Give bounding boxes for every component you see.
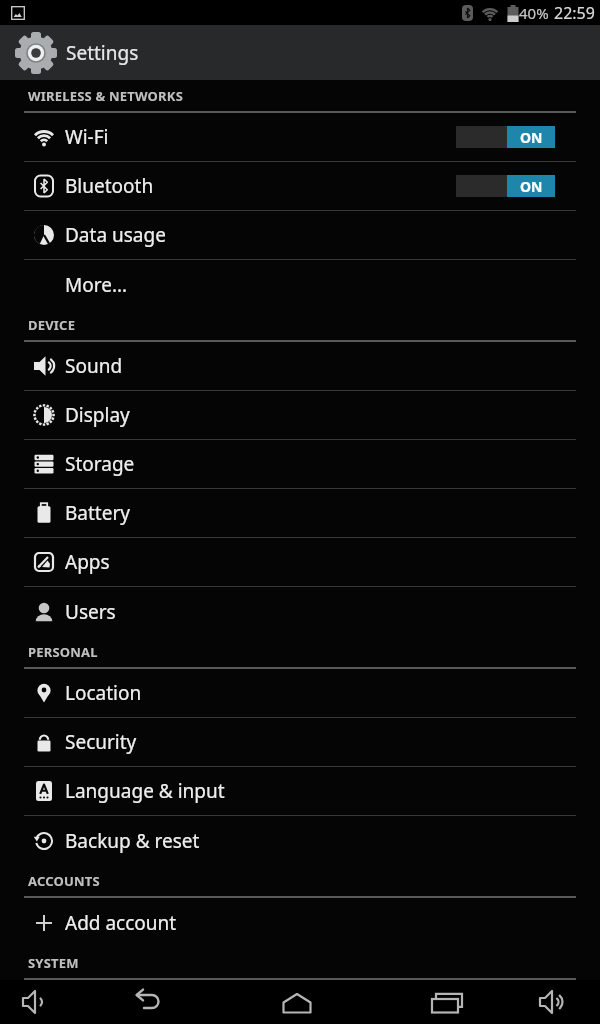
button[interactable]: Display — [0, 391, 600, 439]
staticText: Data usage — [65, 222, 166, 248]
button[interactable]: Users — [0, 587, 600, 636]
button[interactable]: Bluetooth — [0, 162, 600, 210]
staticText: Storage — [65, 451, 135, 477]
button[interactable]: Apps — [0, 538, 600, 586]
button[interactable]: Battery — [0, 489, 600, 537]
staticText: Display — [65, 402, 130, 428]
button[interactable]: ON — [456, 175, 555, 197]
button[interactable]: Data usage — [0, 211, 600, 259]
button[interactable]: Add account — [0, 898, 600, 947]
staticText: Security — [65, 729, 137, 755]
staticText: More… — [65, 272, 127, 298]
staticText: Wi-Fi — [65, 124, 109, 150]
staticText: Backup & reset — [65, 828, 200, 854]
staticText: DEVICE — [28, 316, 76, 334]
staticText: Bluetooth — [65, 173, 154, 199]
button[interactable]: Sound — [0, 342, 600, 390]
staticText: Settings — [66, 40, 139, 66]
button[interactable] — [2, 980, 72, 1024]
staticText: Location — [65, 680, 142, 706]
staticText: SYSTEM — [28, 954, 79, 972]
staticText: Sound — [65, 353, 123, 379]
button[interactable]: Location — [0, 669, 600, 717]
staticText: Battery — [65, 500, 130, 526]
button[interactable] — [115, 980, 185, 1024]
button[interactable]: ON — [456, 126, 555, 148]
staticText: WIRELESS & NETWORKS — [28, 87, 184, 105]
button[interactable]: Security — [0, 718, 600, 766]
button[interactable]: Backup & reset — [0, 816, 600, 865]
staticText: ON — [520, 128, 543, 147]
staticText: Add account — [65, 910, 177, 936]
button[interactable]: Wi-Fi — [0, 113, 600, 161]
staticText: Language & input — [65, 778, 225, 804]
button[interactable] — [262, 980, 332, 1024]
button[interactable]: Storage — [0, 440, 600, 488]
button[interactable]: More… — [0, 260, 600, 309]
staticText: ON — [520, 177, 543, 196]
button[interactable] — [523, 980, 593, 1024]
staticText: Apps — [65, 549, 110, 575]
button[interactable] — [412, 980, 482, 1024]
staticText: Users — [65, 599, 116, 625]
button[interactable]: Language & input — [0, 767, 600, 815]
staticText: PERSONAL — [28, 643, 98, 661]
staticText: 40% — [519, 3, 549, 23]
staticText: 22:59 — [554, 2, 595, 24]
staticText: ACCOUNTS — [28, 872, 100, 890]
